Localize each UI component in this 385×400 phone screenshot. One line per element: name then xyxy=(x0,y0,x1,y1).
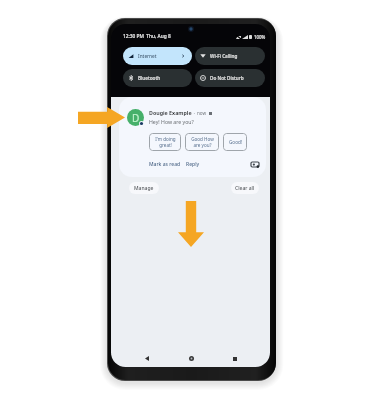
button[interactable]: Smart reply xyxy=(250,160,259,169)
staticText: · xyxy=(192,109,197,116)
staticText: Clear all xyxy=(235,185,255,192)
staticText: Wi-Fi Calling xyxy=(210,53,238,59)
staticText: Internet xyxy=(138,53,157,59)
button[interactable]: Good How are you? xyxy=(185,133,219,151)
staticText: Manage xyxy=(134,185,154,192)
button[interactable]: Internet xyxy=(123,47,192,65)
staticText: Good! xyxy=(229,139,242,145)
button[interactable]: Home xyxy=(185,352,198,365)
staticText: 12:30 PM Thu, Aug 8 xyxy=(123,33,171,40)
button[interactable]: Back xyxy=(140,352,153,365)
button[interactable]: D xyxy=(119,97,266,177)
staticText: now xyxy=(197,110,207,116)
button[interactable]: Do Not Disturb xyxy=(195,69,265,87)
staticText: Mark as read xyxy=(149,161,181,168)
staticText: 100% xyxy=(254,34,266,39)
staticText: I'm doing great! xyxy=(155,136,176,148)
button[interactable]: Manage xyxy=(129,182,159,194)
button[interactable]: I'm doing great! xyxy=(149,133,181,151)
staticText: Do Not Disturb xyxy=(210,75,244,81)
button[interactable]: Clear all xyxy=(231,182,259,194)
staticText: Good How are you? xyxy=(191,136,214,148)
staticText: Reply xyxy=(186,161,200,168)
button[interactable]: Wi-Fi Calling xyxy=(195,47,265,65)
staticText: Hey! How are you? xyxy=(149,118,194,125)
button[interactable]: Mark as read xyxy=(149,160,181,169)
button[interactable]: Bluetooth xyxy=(123,69,192,87)
button[interactable]: Good! xyxy=(223,133,247,151)
staticText: D xyxy=(132,111,140,125)
staticText: Dougie Example xyxy=(149,109,192,116)
button[interactable]: Reply xyxy=(186,160,200,169)
button[interactable]: Recent apps xyxy=(228,352,241,365)
staticText: Bluetooth xyxy=(138,75,161,81)
